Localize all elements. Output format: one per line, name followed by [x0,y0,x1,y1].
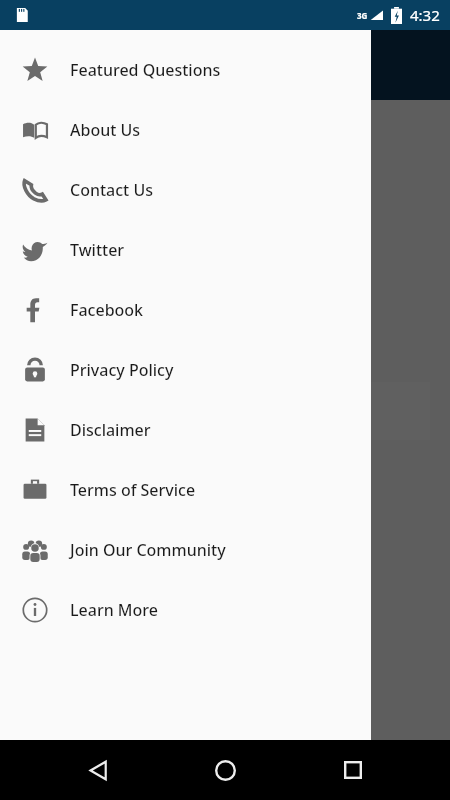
button[interactable]: Recent apps [323,740,383,800]
staticText: Disclaimer [70,419,151,441]
staticText: Facebook [70,299,144,321]
button[interactable]: Join Our Community [0,520,371,580]
button[interactable]: Privacy Policy [0,340,371,400]
button[interactable]: Back [68,740,128,800]
staticText: Terms of Service [70,479,196,501]
button[interactable]: About Us [0,100,371,160]
staticText: Privacy Policy [70,359,174,381]
button[interactable]: Facebook [0,280,371,340]
button[interactable]: Featured Questions [0,40,371,100]
button[interactable]: Learn More [0,580,371,640]
button[interactable]: Twitter [0,220,371,280]
button[interactable]: Terms of Service [0,460,371,520]
button[interactable]: Home [195,740,255,800]
staticText: Twitter [70,239,125,261]
staticText: Join Our Community [70,539,226,561]
staticText: 4:32 [410,5,440,25]
staticText: About Us [70,119,141,141]
staticText: Contact Us [70,179,153,201]
staticText: Learn More [70,599,158,621]
staticText: Featured Questions [70,59,221,81]
staticText: 3G [357,10,368,21]
button[interactable]: Contact Us [0,160,371,220]
button[interactable]: Disclaimer [0,400,371,460]
